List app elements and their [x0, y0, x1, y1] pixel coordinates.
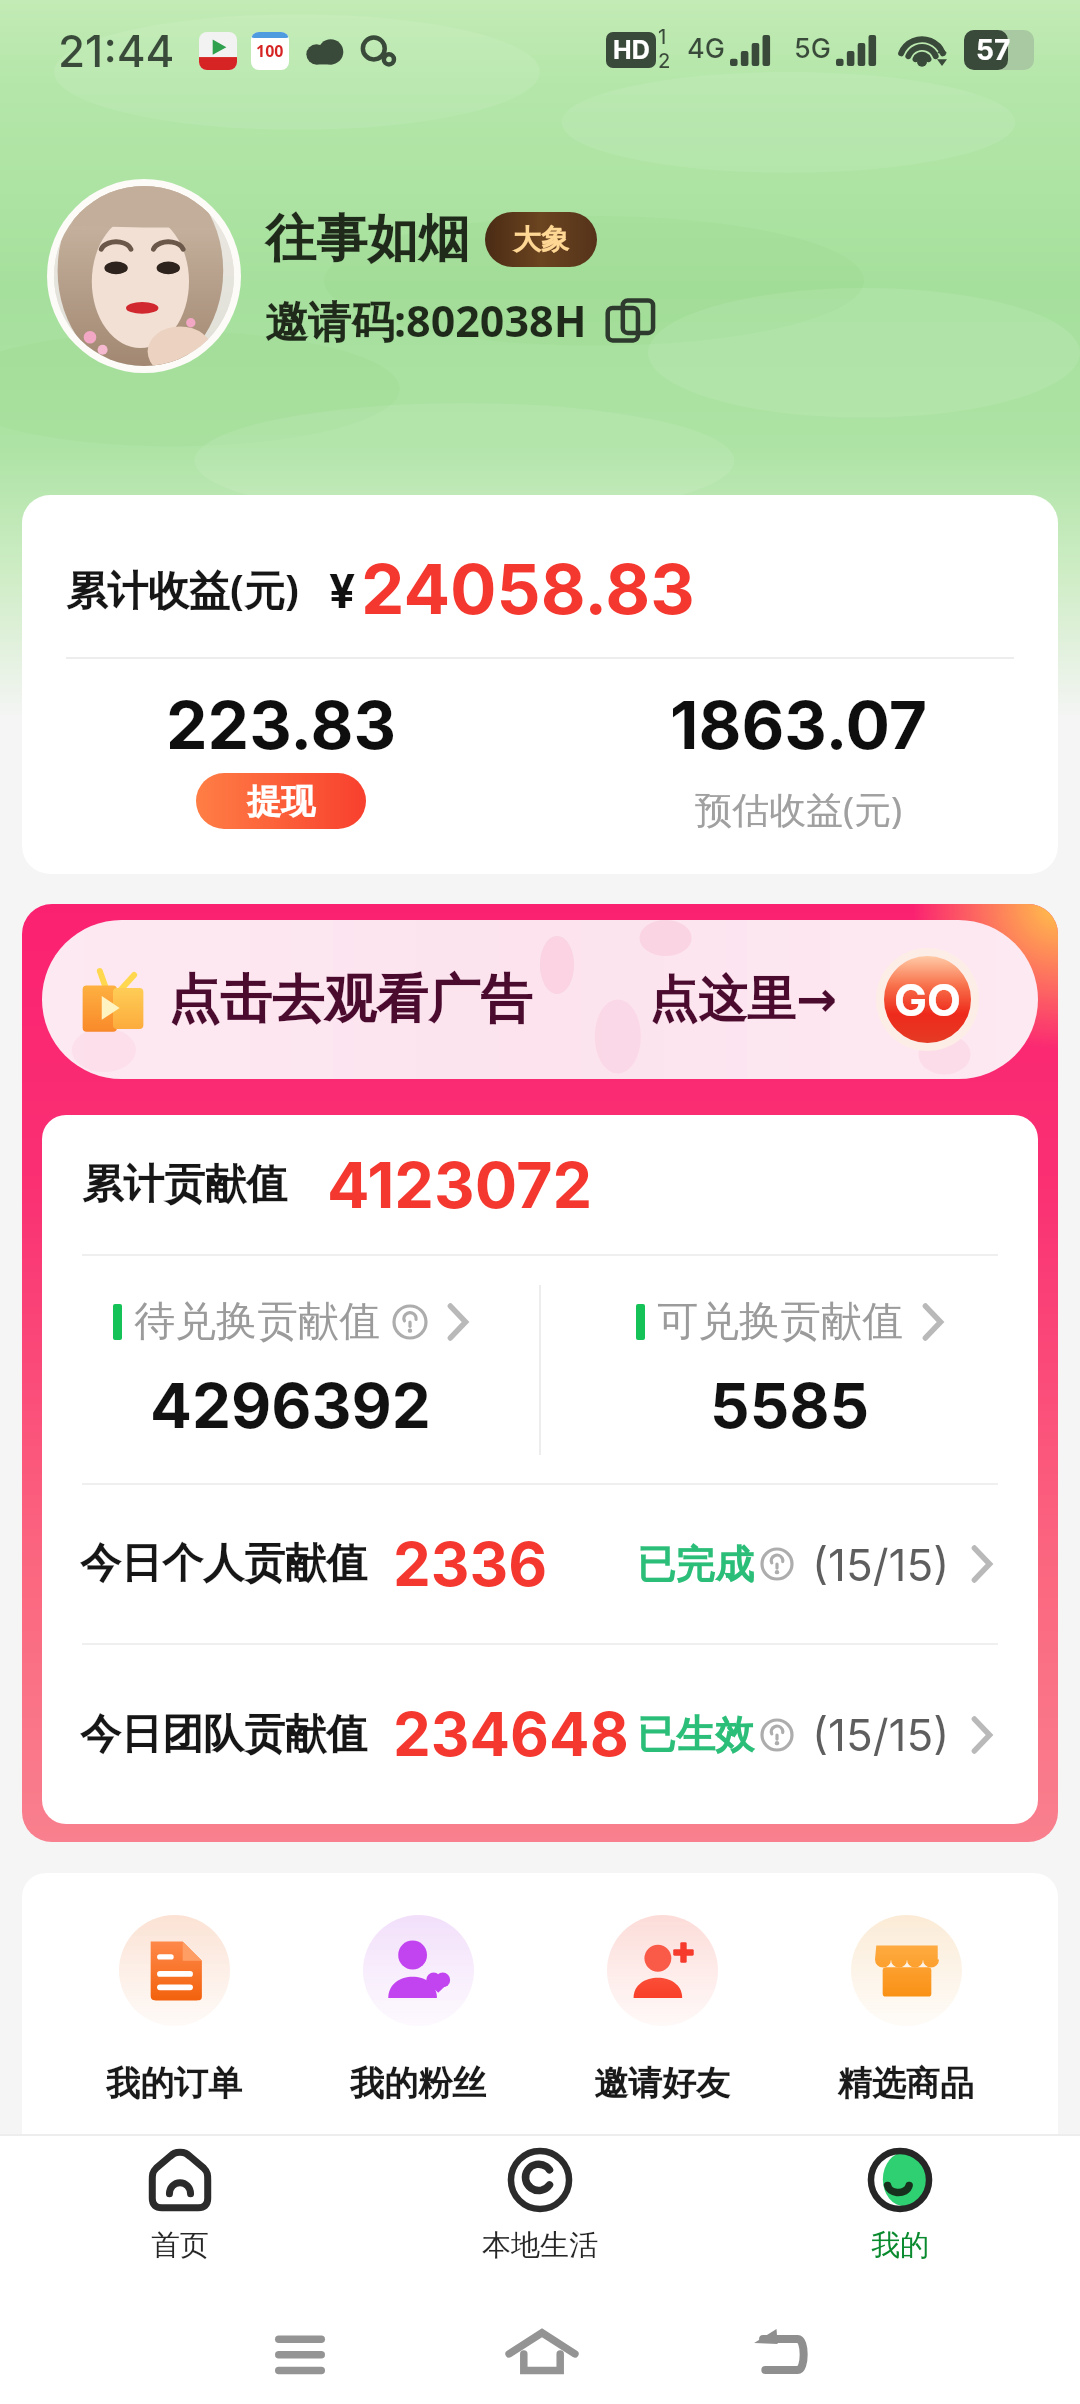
staticText: 精选商品	[838, 2062, 974, 2105]
button[interactable]: 待兑换贡献值	[42, 1256, 539, 1483]
staticText: 2	[658, 49, 671, 73]
staticText: 我的	[871, 2227, 929, 2264]
button[interactable]: 首页	[0, 2134, 360, 2290]
staticText: 100	[256, 40, 284, 62]
staticText: (15/15)	[812, 1708, 950, 1761]
staticText: 本地生活	[482, 2227, 598, 2264]
button[interactable]: 大象	[485, 212, 597, 267]
staticText: 我的粉丝	[350, 2062, 486, 2105]
staticText: ¥	[329, 563, 356, 619]
staticText: 提现	[247, 780, 315, 823]
staticText: 邀请码:802038H	[265, 291, 587, 350]
staticText: 21:44	[58, 24, 175, 77]
button[interactable]: 223.83	[22, 685, 540, 829]
button[interactable]: 今日团队贡献值	[42, 1645, 1038, 1824]
staticText: 待兑换贡献值	[134, 1296, 380, 1348]
staticText: 大象	[513, 222, 569, 257]
staticText: 邀请好友	[594, 2062, 730, 2105]
button[interactable]: 1863.07	[540, 685, 1058, 834]
staticText: 首页	[151, 2227, 209, 2264]
staticText: 我的订单	[106, 2062, 242, 2105]
staticText: 223.83	[166, 685, 397, 765]
staticText: HD	[613, 35, 650, 65]
staticText: GO	[894, 973, 961, 1026]
button[interactable]: Recents	[252, 2305, 348, 2401]
staticText: 点这里→	[649, 969, 838, 1031]
button[interactable]: 我的	[720, 2134, 1080, 2290]
button[interactable]: 点击去观看广告	[42, 920, 1038, 1079]
staticText: 今日团队贡献值	[80, 1709, 367, 1761]
staticText: 5G	[794, 32, 831, 65]
button[interactable]: 本地生活	[360, 2134, 720, 2290]
button[interactable]: 邀请好友	[540, 1915, 784, 2105]
staticText: 已完成	[637, 1540, 754, 1589]
staticText: 5585	[710, 1368, 870, 1443]
button[interactable]: 提现	[196, 773, 366, 829]
staticText: 4123072	[327, 1147, 593, 1223]
staticText: (15/15)	[812, 1538, 950, 1591]
button[interactable]: 复制邀请码	[605, 294, 659, 348]
staticText: 点击去观看广告	[168, 967, 532, 1033]
button[interactable]: Back	[733, 2305, 829, 2401]
staticText: 往事如烟	[265, 207, 469, 271]
staticText: 预估收益(元)	[695, 783, 903, 834]
staticText: 可兑换贡献值	[657, 1296, 903, 1348]
staticText: 累计收益(元)	[66, 561, 299, 617]
button[interactable]: 我的粉丝	[296, 1915, 540, 2105]
button[interactable]: 今日个人贡献值	[42, 1485, 1038, 1643]
button[interactable]: 我的订单	[52, 1915, 296, 2105]
staticText: 累计贡献值	[82, 1159, 287, 1211]
button[interactable]: 精选商品	[784, 1915, 1028, 2105]
staticText: 1	[658, 25, 667, 49]
staticText: 2336	[393, 1528, 548, 1601]
staticText: 57	[976, 33, 1011, 67]
staticText: 已生效	[637, 1710, 754, 1759]
staticText: 4296392	[150, 1368, 431, 1443]
staticText: 4G	[687, 32, 725, 65]
staticText: 24058.83	[361, 547, 695, 630]
button[interactable]: 可兑换贡献值	[541, 1256, 1038, 1483]
staticText: 234648	[393, 1698, 629, 1771]
button[interactable]: Home	[494, 2305, 590, 2401]
staticText: 今日个人贡献值	[80, 1538, 367, 1590]
staticText: 1863.07	[670, 685, 928, 765]
